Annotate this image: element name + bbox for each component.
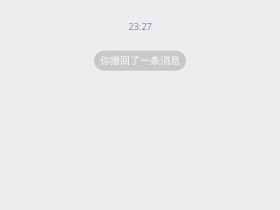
staticText: 你撤回了一条消息 — [100, 54, 180, 67]
staticText: 23:27 — [128, 20, 151, 33]
